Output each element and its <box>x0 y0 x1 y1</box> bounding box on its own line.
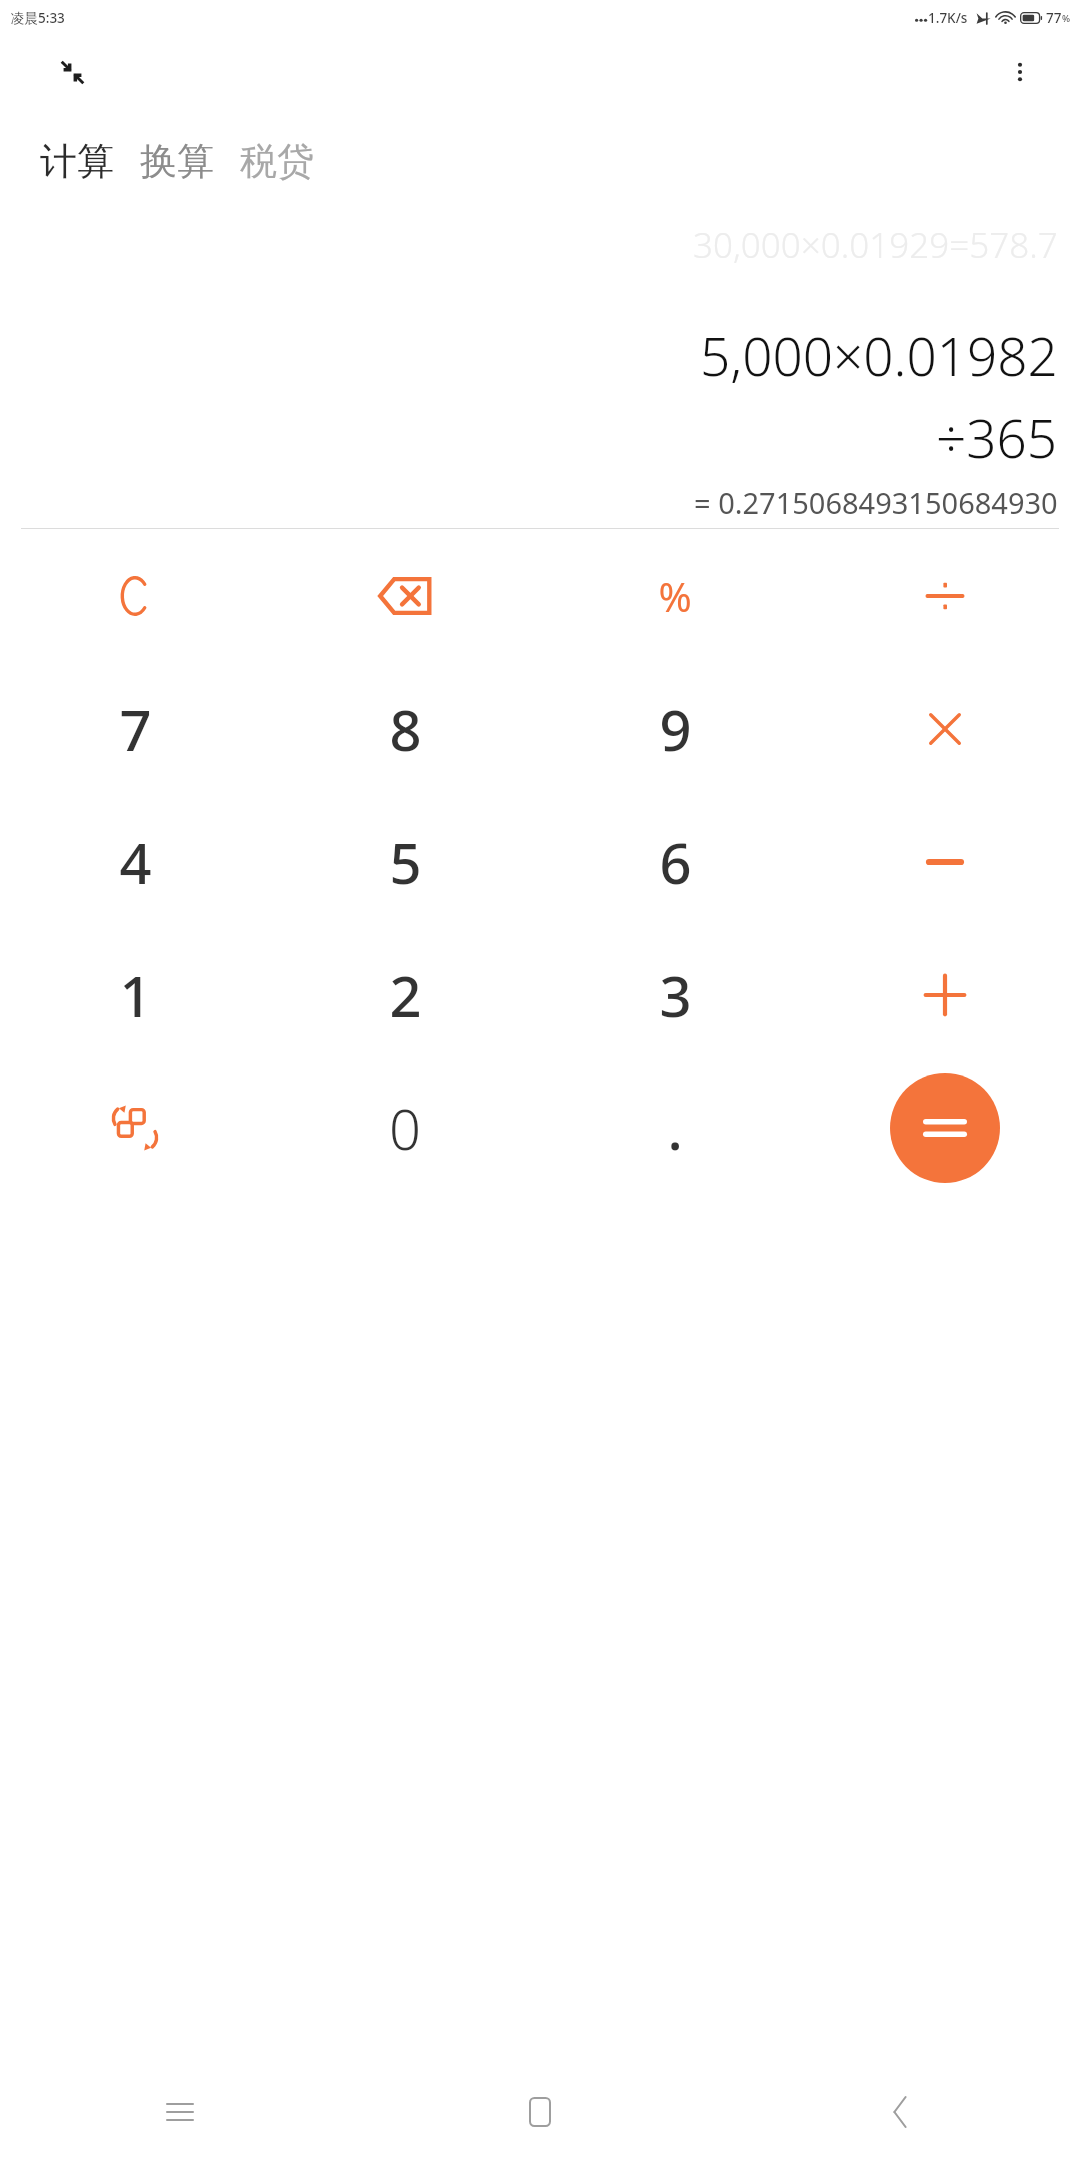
staticText: 77 <box>1046 9 1062 27</box>
staticText: 9 <box>659 691 692 767</box>
button[interactable]: 计算 <box>36 134 118 189</box>
button[interactable]: 3 <box>540 928 810 1061</box>
staticText: 5,000×0.01982 <box>700 319 1058 391</box>
button[interactable]: 1 <box>0 928 270 1061</box>
staticText: 换算 <box>140 138 214 185</box>
staticText: % <box>1062 12 1071 25</box>
staticText: = 0.2715068493150684930 <box>694 483 1058 522</box>
button[interactable]: Divide <box>810 529 1080 662</box>
button[interactable]: Back <box>720 2064 1080 2160</box>
staticText: 0 <box>389 1090 421 1166</box>
button[interactable]: 9 <box>540 662 810 795</box>
button[interactable]: Exit fullscreen <box>48 48 96 96</box>
button[interactable]: % <box>540 529 810 662</box>
button[interactable]: Convert units <box>0 1061 270 1194</box>
staticText: 4 <box>119 824 152 900</box>
button[interactable]: More options <box>996 48 1044 96</box>
button[interactable]: 8 <box>270 662 540 795</box>
staticText: 6 <box>659 824 692 900</box>
staticText: ÷365 <box>936 401 1058 473</box>
button[interactable]: 0 <box>270 1061 540 1194</box>
staticText: 7 <box>119 691 152 767</box>
button[interactable]: Multiply <box>810 662 1080 795</box>
staticText: 1 <box>119 957 152 1033</box>
staticText: 凌晨5:33 <box>11 9 65 27</box>
staticText: . <box>667 1090 683 1166</box>
button[interactable]: Equals <box>810 1061 1080 1194</box>
staticText: 税贷 <box>240 138 314 185</box>
staticText: 1.7K/s <box>928 9 968 27</box>
button[interactable]: Minus <box>810 795 1080 928</box>
button[interactable]: Home <box>360 2064 720 2160</box>
staticText: 30,000×0.01929=578.7 <box>693 221 1058 269</box>
button[interactable]: 4 <box>0 795 270 928</box>
button[interactable]: 税贷 <box>236 134 318 189</box>
staticText: 2 <box>389 957 422 1033</box>
button[interactable]: Clear <box>0 529 270 662</box>
button[interactable]: . <box>540 1061 810 1194</box>
staticText: 3 <box>659 957 692 1033</box>
button[interactable]: 6 <box>540 795 810 928</box>
button[interactable]: 7 <box>0 662 270 795</box>
staticText: 8 <box>389 691 422 767</box>
button[interactable]: 换算 <box>136 134 218 189</box>
button[interactable]: Recents <box>0 2064 360 2160</box>
staticText: 5 <box>389 824 422 900</box>
button[interactable]: 5 <box>270 795 540 928</box>
button[interactable]: Plus <box>810 928 1080 1061</box>
button[interactable]: 2 <box>270 928 540 1061</box>
button[interactable]: Backspace <box>270 529 540 662</box>
staticText: % <box>658 569 692 623</box>
staticText: 计算 <box>40 138 114 185</box>
